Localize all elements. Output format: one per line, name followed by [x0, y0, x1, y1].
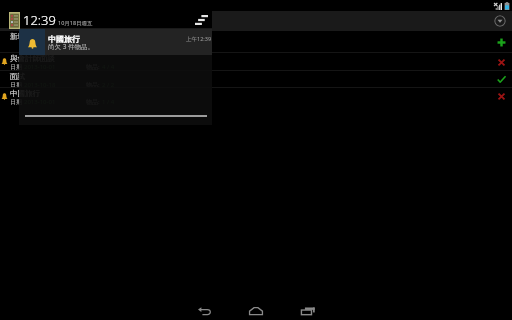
- staticText: 10月18日週五: [58, 19, 93, 27]
- staticText: 12:39: [23, 11, 56, 28]
- staticText: 面試: [10, 72, 25, 81]
- staticText: 中國旅行: [48, 34, 80, 44]
- button[interactable]: Recents: [282, 301, 334, 320]
- button[interactable]: More options: [494, 15, 506, 27]
- staticText: 與會計師面談: [10, 54, 55, 63]
- button[interactable]: 面試: [0, 71, 512, 88]
- staticText: 物品:: [86, 63, 102, 71]
- button[interactable]: Back: [178, 301, 230, 320]
- staticText: 日期: [10, 81, 24, 89]
- staticText: 物品:: [86, 81, 102, 89]
- staticText: 日期: [10, 63, 24, 71]
- button[interactable]: 中國旅行: [19, 29, 212, 55]
- staticText: 物品:: [86, 98, 102, 106]
- staticText: 日期: [10, 98, 24, 106]
- button[interactable]: 中國旅行: [0, 88, 512, 105]
- staticText: 中國旅行: [10, 89, 40, 98]
- button[interactable]: 新增: [0, 31, 512, 53]
- button[interactable]: Quick settings: [195, 15, 208, 25]
- staticText: 新增: [10, 32, 25, 41]
- button[interactable]: 與會計師面談: [0, 53, 512, 71]
- button[interactable]: Home: [230, 301, 282, 320]
- staticText: 上午12:39: [186, 35, 212, 43]
- staticText: 尚欠 3 件物品。: [48, 42, 95, 51]
